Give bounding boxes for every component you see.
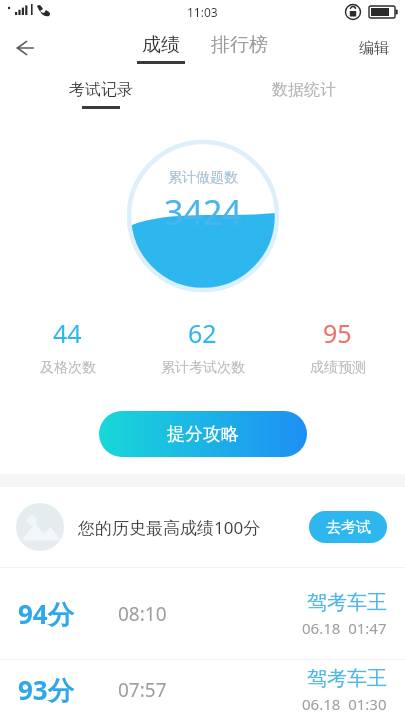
staticText: 您的历史最高成绩100分 — [78, 516, 301, 539]
button[interactable]: 去考试 — [309, 511, 387, 543]
button[interactable]: 数据统计 — [202, 72, 405, 116]
button[interactable]: 93分 — [0, 660, 405, 720]
staticText: 排行榜 — [211, 33, 268, 57]
button[interactable]: 95 — [270, 316, 405, 377]
staticText: 成绩 — [142, 33, 180, 57]
button[interactable]: Back — [0, 24, 48, 72]
staticText: 累计考试次数 — [161, 359, 245, 377]
staticText: 提分攻略 — [167, 423, 239, 446]
staticText: 06.18 01:30 — [302, 694, 387, 714]
staticText: 驾考车王 — [307, 666, 387, 691]
staticText: 驾考车王 — [307, 590, 387, 615]
button[interactable]: 考试记录 — [0, 72, 202, 116]
staticText: 44 — [53, 316, 82, 350]
staticText: 数据统计 — [272, 80, 336, 100]
staticText: 94分 — [18, 596, 118, 632]
staticText: 累计做题数 — [168, 169, 238, 187]
button[interactable]: 您的历史最高成绩100分 — [0, 487, 405, 567]
staticText: 62 — [188, 316, 217, 350]
staticText: 去考试 — [326, 518, 371, 537]
staticText: 93分 — [18, 672, 118, 708]
button[interactable]: 编辑 — [343, 27, 405, 70]
staticText: 08:10 — [118, 601, 302, 627]
button[interactable]: 排行榜 — [207, 33, 272, 64]
staticText: 11:03 — [187, 4, 218, 20]
staticText: 考试记录 — [69, 80, 133, 100]
button[interactable]: 44 — [0, 316, 135, 377]
staticText: 3424 — [164, 189, 242, 235]
staticText: 编辑 — [359, 39, 389, 58]
staticText: 07:57 — [118, 677, 302, 703]
button[interactable]: 成绩 — [133, 33, 189, 64]
button[interactable]: 62 — [135, 316, 270, 377]
staticText: 及格次数 — [40, 359, 96, 377]
button[interactable]: 94分 — [0, 568, 405, 659]
staticText: 06.18 01:47 — [302, 618, 387, 638]
staticText: 95 — [323, 316, 352, 350]
button[interactable]: 提分攻略 — [99, 411, 307, 457]
staticText: 成绩预测 — [310, 359, 366, 377]
